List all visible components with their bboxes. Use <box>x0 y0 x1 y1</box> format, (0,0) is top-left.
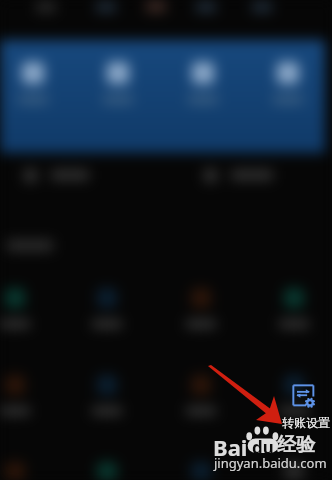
button[interactable] <box>272 462 316 480</box>
button[interactable] <box>181 62 225 104</box>
button[interactable] <box>85 288 129 328</box>
button[interactable] <box>0 162 166 188</box>
button[interactable] <box>0 288 37 328</box>
staticText: du <box>252 436 274 459</box>
button[interactable] <box>266 62 310 104</box>
staticText: Bai <box>213 432 248 462</box>
button[interactable] <box>0 462 37 480</box>
staticText: jingyan.baidu.com <box>214 454 327 472</box>
staticText: 转账设置 <box>282 415 330 430</box>
button[interactable] <box>179 288 223 328</box>
button[interactable] <box>85 462 129 480</box>
button[interactable] <box>179 375 223 415</box>
staticText: 经验 <box>277 433 315 457</box>
button[interactable] <box>272 375 316 415</box>
button[interactable]: 转账设置 <box>291 383 317 409</box>
button[interactable] <box>0 375 37 415</box>
button[interactable] <box>179 462 223 480</box>
button[interactable] <box>96 62 140 104</box>
button[interactable] <box>11 62 55 104</box>
button[interactable] <box>85 375 129 415</box>
button[interactable] <box>166 162 332 188</box>
button[interactable] <box>272 288 316 328</box>
